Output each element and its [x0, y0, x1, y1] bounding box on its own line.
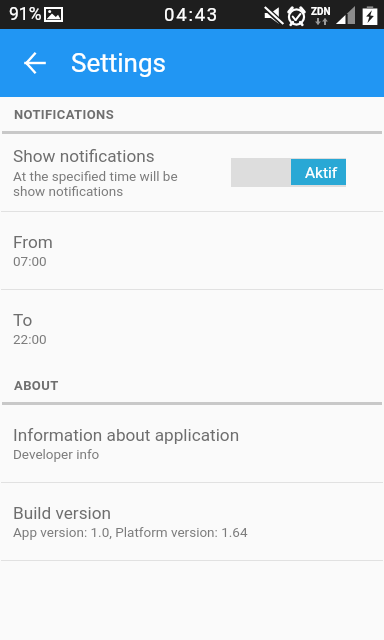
staticText: Information about application	[13, 425, 240, 445]
staticText: Aktif	[305, 164, 338, 182]
staticText: Settings	[71, 48, 166, 78]
staticText: To	[13, 310, 33, 330]
button[interactable]: Build version	[0, 483, 384, 560]
button[interactable]: Back	[11, 39, 59, 87]
staticText: ABOUT	[14, 378, 59, 393]
staticText: ZDN	[311, 6, 331, 18]
button[interactable]: Toggle notifications	[231, 158, 346, 187]
staticText: NOTIFICATIONS	[14, 107, 115, 122]
button[interactable]: Show notifications	[0, 134, 384, 211]
button[interactable]: To	[0, 290, 384, 367]
button[interactable]: From	[0, 212, 384, 289]
staticText: Build version	[13, 503, 111, 523]
staticText: At the specified time will be show notif…	[13, 168, 178, 199]
staticText: From	[13, 232, 53, 252]
staticText: Developer info	[13, 446, 100, 462]
staticText: 22:00	[13, 331, 47, 347]
staticText: 07:00	[13, 253, 47, 269]
staticText: Show notifications	[13, 146, 155, 166]
staticText: 04:43	[164, 4, 220, 26]
staticText: App version: 1.0, Platform version: 1.64	[13, 524, 248, 540]
staticText: 91%	[9, 4, 42, 25]
button[interactable]: Information about application	[0, 405, 384, 482]
